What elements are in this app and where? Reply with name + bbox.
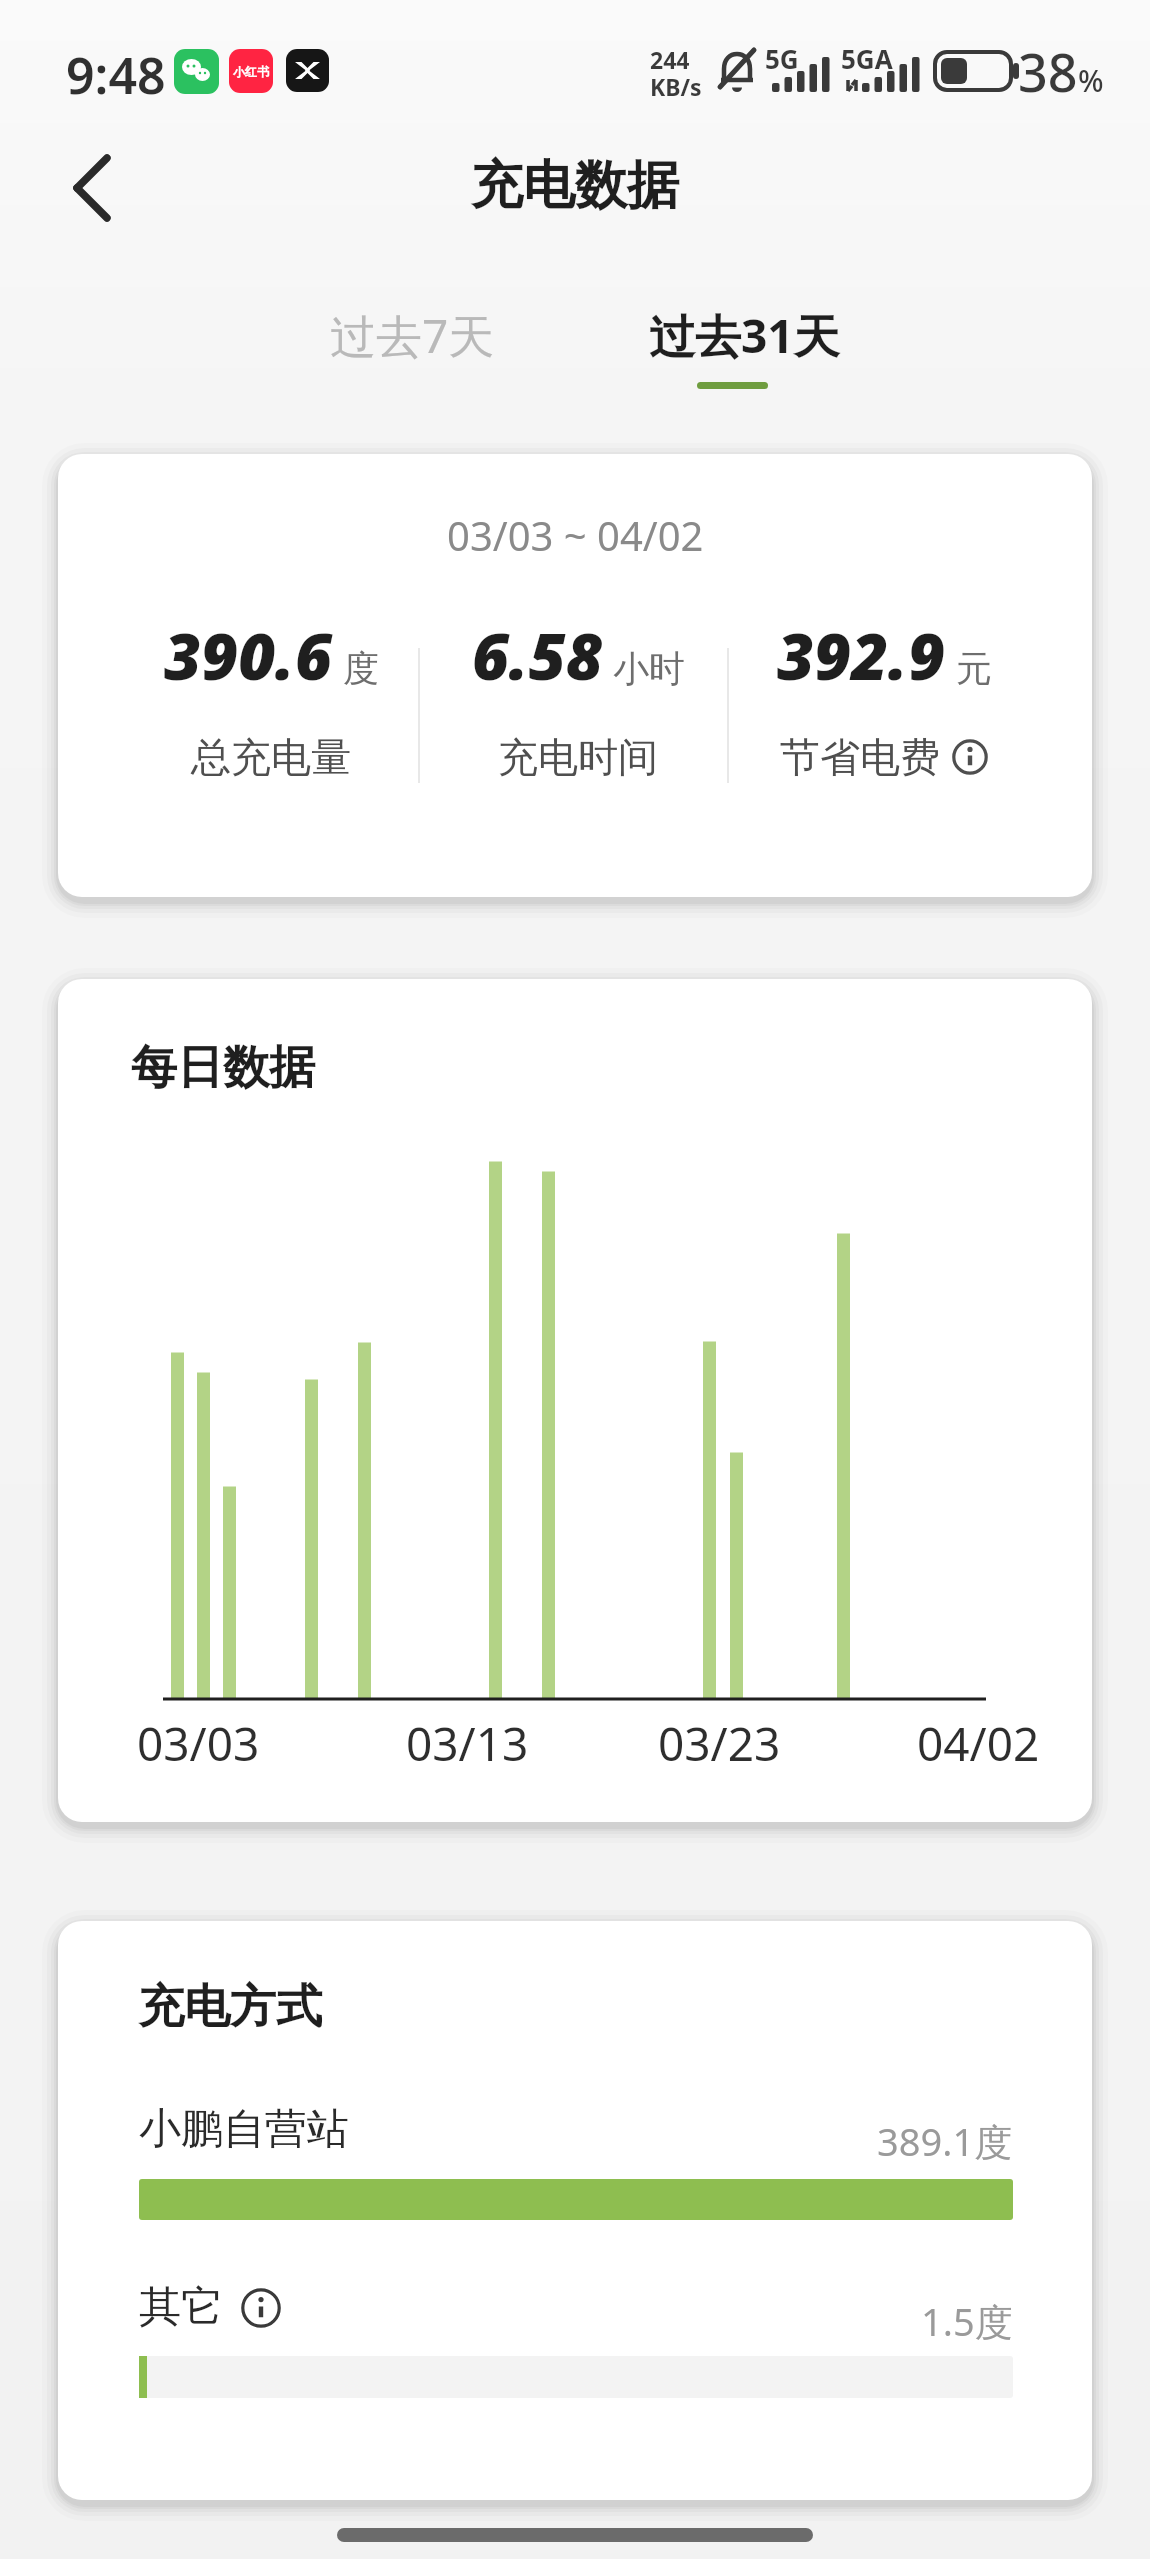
staticText: 38 bbox=[1018, 36, 1078, 107]
staticText: 9:48 bbox=[66, 41, 166, 109]
button[interactable] bbox=[58, 150, 128, 225]
staticText: 03/23 bbox=[658, 1712, 781, 1775]
staticText: 过去31天 bbox=[649, 304, 840, 367]
button[interactable]: 小鹏自营站 bbox=[139, 2103, 1092, 2156]
staticText: 03/13 bbox=[406, 1712, 529, 1775]
staticText: 元 bbox=[956, 646, 992, 691]
staticText: 小红书 bbox=[233, 64, 269, 79]
staticText: % bbox=[1078, 60, 1104, 101]
button[interactable]: 过去31天 bbox=[632, 295, 857, 375]
button[interactable]: 过去7天 bbox=[320, 295, 505, 375]
staticText: 充电方式 bbox=[138, 1978, 322, 2036]
button[interactable] bbox=[952, 739, 988, 775]
staticText: 5G bbox=[765, 41, 799, 76]
staticText: 244 bbox=[650, 44, 690, 75]
staticText: 389.1度 bbox=[877, 2115, 1013, 2167]
staticText: 03/03 ~ 04/02 bbox=[447, 508, 704, 562]
staticText: 04/02 bbox=[917, 1712, 1040, 1775]
staticText: 充电数据 bbox=[471, 153, 679, 219]
button[interactable]: 其它 bbox=[139, 2281, 281, 2334]
staticText: 1.5度 bbox=[921, 2295, 1013, 2347]
staticText: 充电时间 bbox=[498, 732, 658, 782]
staticText: 03/03 bbox=[137, 1712, 260, 1775]
staticText: KB/s bbox=[650, 71, 702, 102]
staticText: 392.9 bbox=[777, 612, 946, 699]
staticText: 总充电量 bbox=[191, 732, 351, 782]
staticText: 节省电费 bbox=[780, 732, 940, 782]
staticText: 其它 bbox=[139, 2281, 223, 2334]
staticText: 390.6 bbox=[164, 612, 333, 699]
staticText: 5GA bbox=[841, 41, 893, 76]
staticText: 过去7天 bbox=[330, 304, 495, 367]
staticText: 小时 bbox=[613, 646, 685, 691]
staticText: 小鹏自营站 bbox=[139, 2103, 349, 2156]
staticText: 6.58 bbox=[472, 612, 603, 699]
staticText: 度 bbox=[343, 646, 379, 691]
staticText: 每日数据 bbox=[131, 1039, 315, 1097]
